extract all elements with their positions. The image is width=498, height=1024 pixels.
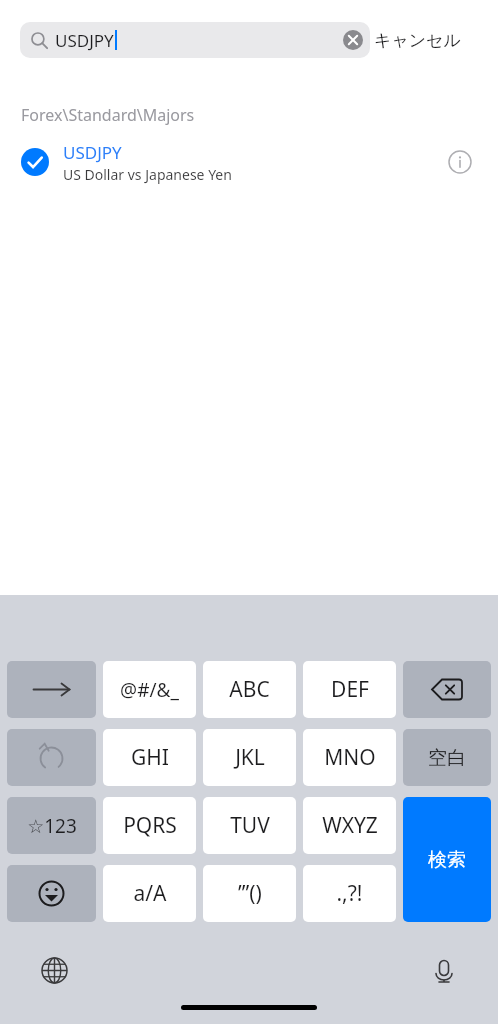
button[interactable]: Emoji: [7, 865, 96, 922]
staticText: WXYZ: [322, 811, 378, 840]
staticText: 空白: [428, 746, 466, 770]
button[interactable]: DEF: [303, 661, 396, 718]
button[interactable]: PQRS: [103, 797, 196, 854]
button[interactable]: ’”(): [203, 865, 296, 922]
button[interactable]: ☆123: [7, 797, 96, 854]
button[interactable]: GHI: [103, 729, 196, 786]
button[interactable]: USDJPY: [0, 138, 498, 186]
button[interactable]: ABC: [203, 661, 296, 718]
staticText: ☆123: [27, 813, 77, 839]
staticText: MNO: [324, 743, 376, 772]
button[interactable]: Info: [438, 140, 482, 184]
button[interactable]: Change keyboard: [32, 948, 76, 992]
button[interactable]: キャンセル: [374, 18, 461, 62]
staticText: .,?!: [336, 879, 363, 908]
button[interactable]: TUV: [203, 797, 296, 854]
staticText: US Dollar vs Japanese Yen: [63, 165, 232, 184]
button[interactable]: 検索: [403, 797, 491, 922]
staticText: ’”(): [238, 879, 262, 908]
staticText: ABC: [229, 675, 270, 704]
button[interactable]: 空白: [403, 729, 491, 786]
button[interactable]: Delete: [403, 661, 491, 718]
button[interactable]: @#/&_: [103, 661, 196, 718]
staticText: キャンセル: [374, 30, 461, 51]
button[interactable]: Clear text: [338, 25, 368, 55]
button[interactable]: JKL: [203, 729, 296, 786]
button[interactable]: a/A: [103, 865, 196, 922]
staticText: DEF: [331, 675, 369, 704]
staticText: GHI: [131, 743, 169, 772]
button[interactable]: MNO: [303, 729, 396, 786]
staticText: 検索: [428, 848, 466, 872]
staticText: TUV: [230, 811, 270, 840]
button[interactable]: WXYZ: [303, 797, 396, 854]
staticText: Forex\Standard\Majors: [21, 104, 195, 126]
button[interactable]: Dictation: [422, 948, 466, 992]
staticText: @#/&_: [120, 677, 179, 703]
staticText: PQRS: [123, 811, 177, 840]
staticText: USDJPY: [63, 141, 122, 164]
button[interactable]: Next candidate: [7, 661, 96, 718]
button[interactable]: Undo: [7, 729, 96, 786]
staticText: JKL: [235, 743, 265, 772]
button[interactable]: .,?!: [303, 865, 396, 922]
staticText: a/A: [133, 879, 167, 908]
staticText: USDJPY: [55, 29, 114, 52]
button[interactable]: USDJPY: [20, 22, 370, 58]
